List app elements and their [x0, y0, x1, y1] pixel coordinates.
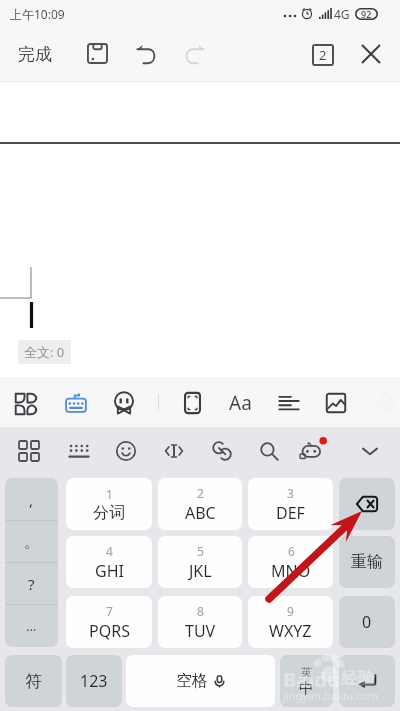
button[interactable]: Image: [318, 385, 353, 420]
staticText: TUV: [185, 620, 216, 642]
staticText: JKL: [189, 560, 212, 582]
button[interactable]: 7: [66, 596, 152, 648]
button[interactable]: Align: [271, 385, 306, 420]
button[interactable]: Handwriting: [106, 385, 141, 420]
button[interactable]: 8: [158, 596, 242, 648]
button[interactable]: 1: [66, 478, 152, 530]
button[interactable]: 2: [158, 478, 242, 530]
button[interactable]: 。: [5, 521, 58, 563]
staticText: 4: [106, 543, 113, 559]
staticText: 符: [25, 671, 42, 692]
button[interactable]: Undo: [130, 38, 163, 71]
button[interactable]: Backspace: [339, 478, 395, 530]
staticText: …: [26, 617, 37, 635]
button[interactable]: Save: [81, 37, 114, 70]
button[interactable]: Aa: [223, 385, 258, 420]
button[interactable]: 6: [248, 536, 333, 588]
staticText: 英: [301, 665, 312, 679]
button[interactable]: Select: [175, 385, 210, 420]
staticText: GHI: [95, 560, 124, 582]
staticText: WXYZ: [269, 620, 312, 642]
button[interactable]: Templates: [7, 385, 42, 420]
staticText: MNO: [271, 560, 311, 582]
staticText: 完成: [18, 44, 52, 65]
staticText: 123: [80, 670, 108, 692]
button[interactable]: Redo: [178, 38, 211, 71]
button[interactable]: 5: [158, 536, 242, 588]
staticText: Aa: [229, 390, 252, 416]
button[interactable]: Cursor: [156, 433, 191, 468]
staticText: 全文: 0: [24, 343, 65, 361]
button[interactable]: Pages: [306, 38, 340, 72]
button[interactable]: Emoji: [108, 433, 143, 468]
staticText: 7: [106, 603, 113, 619]
staticText: 9: [287, 603, 294, 619]
button[interactable]: Search: [251, 433, 286, 468]
staticText: 1: [106, 486, 113, 502]
staticText: 0: [362, 611, 372, 633]
button[interactable]: 4: [66, 536, 152, 588]
staticText: 重输: [351, 552, 383, 572]
staticText: DEF: [276, 502, 305, 524]
button[interactable]: ,: [5, 478, 58, 521]
button[interactable]: 0: [339, 596, 395, 648]
staticText: 3: [287, 485, 294, 501]
button[interactable]: Layouts: [61, 433, 96, 468]
button[interactable]: 英: [280, 655, 333, 707]
button[interactable]: Keyboard: [58, 385, 93, 420]
button[interactable]: …: [5, 605, 58, 647]
button[interactable]: 空格: [126, 655, 275, 707]
staticText: 4G: [334, 6, 350, 22]
staticText: 分词: [93, 503, 125, 523]
staticText: ?: [28, 574, 35, 594]
button[interactable]: AI assistant: [298, 433, 333, 468]
button[interactable]: 重输: [339, 536, 395, 588]
button[interactable]: Close: [354, 37, 388, 71]
button[interactable]: 3: [248, 478, 333, 530]
staticText: 。: [24, 533, 39, 552]
button[interactable]: 9: [248, 596, 333, 648]
button[interactable]: Hide keyboard: [352, 433, 387, 468]
staticText: ,: [29, 490, 34, 510]
staticText: 上午10:09: [10, 6, 65, 22]
button[interactable]: Clipboard: [204, 433, 239, 468]
staticText: ABC: [185, 502, 216, 524]
staticText: 6: [288, 543, 295, 559]
staticText: jingyan.baidu.com: [283, 688, 379, 703]
button[interactable]: Enter: [339, 655, 395, 707]
staticText: PQRS: [89, 620, 130, 642]
staticText: 空格: [176, 671, 208, 691]
button[interactable]: 符: [5, 655, 62, 707]
staticText: 5: [197, 543, 204, 559]
button[interactable]: 123: [66, 655, 122, 707]
staticText: Baidu: [283, 666, 340, 693]
staticText: 中: [299, 679, 314, 698]
staticText: 2: [197, 485, 204, 501]
button[interactable]: 完成: [12, 40, 58, 69]
staticText: 2: [319, 46, 327, 64]
button[interactable]: ?: [5, 563, 58, 605]
button[interactable]: Apps: [11, 433, 46, 468]
staticText: 8: [197, 603, 204, 619]
staticText: 经验: [341, 668, 375, 689]
staticText: 92: [361, 8, 372, 20]
